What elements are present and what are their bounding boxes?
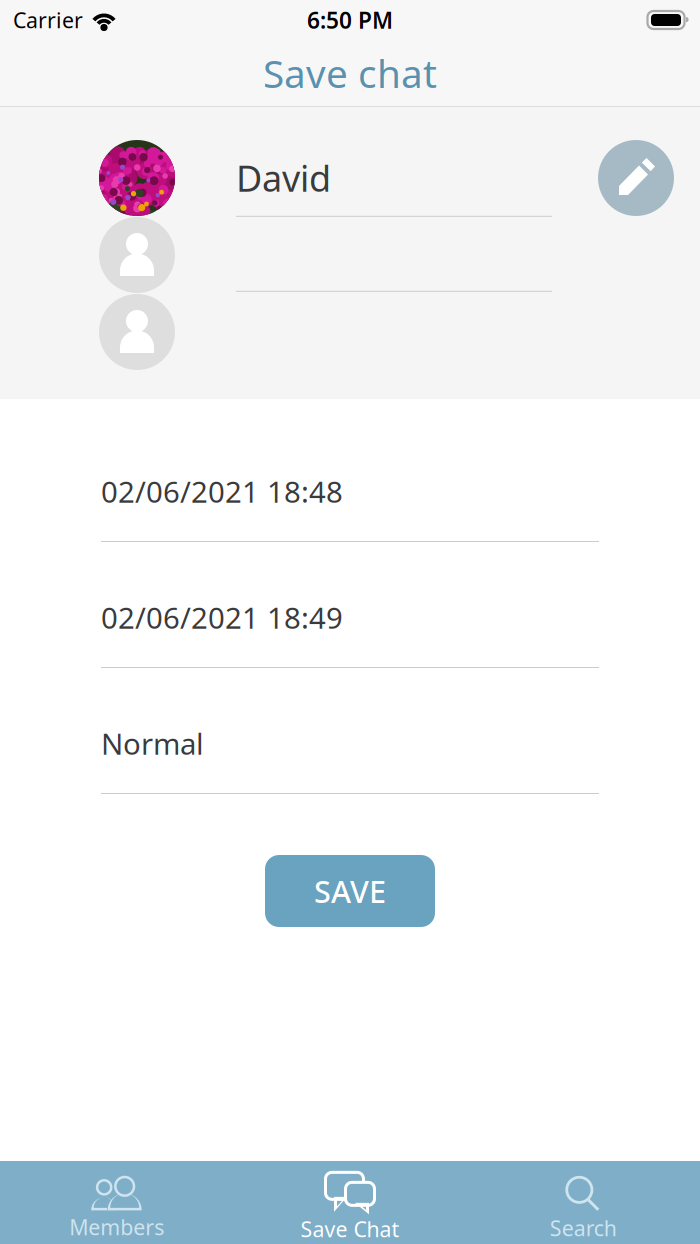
button[interactable]: 02/06/2021 18:48	[101, 464, 599, 542]
staticText: Normal	[101, 724, 204, 763]
button[interactable]: Normal	[101, 716, 599, 794]
staticText: Carrier	[13, 6, 83, 34]
staticText: Members	[69, 1213, 164, 1241]
button[interactable]: Edit	[598, 140, 674, 216]
button[interactable]: Members	[0, 1161, 233, 1244]
button[interactable]: 02/06/2021 18:49	[101, 590, 599, 668]
staticText: Save Chat	[300, 1215, 399, 1243]
button[interactable]: Search	[467, 1161, 700, 1244]
staticText: Save chat	[263, 47, 437, 99]
staticText: 02/06/2021 18:49	[101, 598, 343, 637]
button[interactable]: Save Chat	[233, 1161, 467, 1244]
staticText: David	[236, 154, 331, 202]
staticText: 02/06/2021 18:48	[101, 472, 343, 511]
staticText: Search	[550, 1214, 617, 1242]
staticText: SAVE	[314, 871, 386, 911]
staticText: 6:50 PM	[307, 5, 393, 35]
button[interactable]: SAVE	[265, 855, 435, 927]
